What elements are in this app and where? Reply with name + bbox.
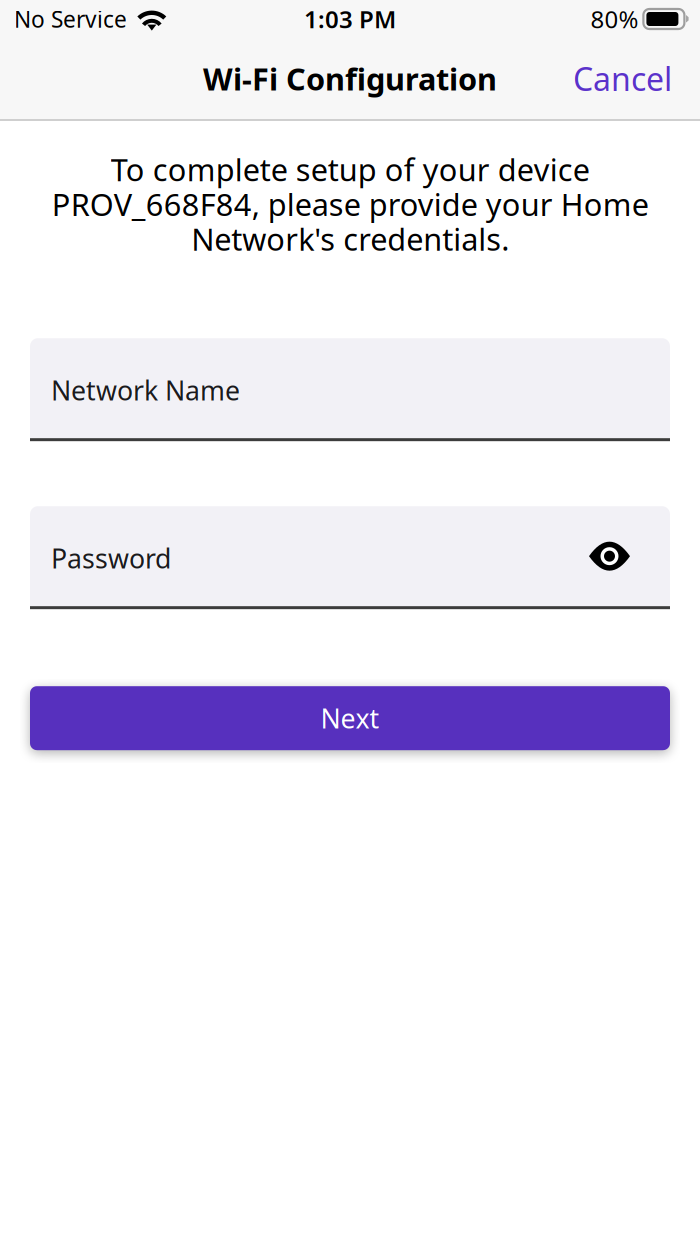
- staticText: To complete setup of your device PROV_66…: [51, 149, 648, 259]
- staticText: Next: [320, 700, 379, 736]
- button[interactable]: Network Name: [30, 338, 670, 441]
- staticText: Network Name: [51, 372, 240, 408]
- button[interactable]: Cancel: [559, 43, 686, 114]
- staticText: Wi-Fi Configuration: [203, 58, 497, 99]
- button[interactable]: Password: [30, 506, 670, 609]
- button[interactable]: Next: [30, 686, 670, 750]
- staticText: Password: [51, 540, 171, 576]
- staticText: Cancel: [573, 57, 672, 100]
- button[interactable]: Show password: [589, 542, 630, 571]
- staticText: No Service: [14, 4, 127, 34]
- staticText: 1:03 PM: [304, 3, 396, 35]
- staticText: 80%: [590, 3, 638, 35]
